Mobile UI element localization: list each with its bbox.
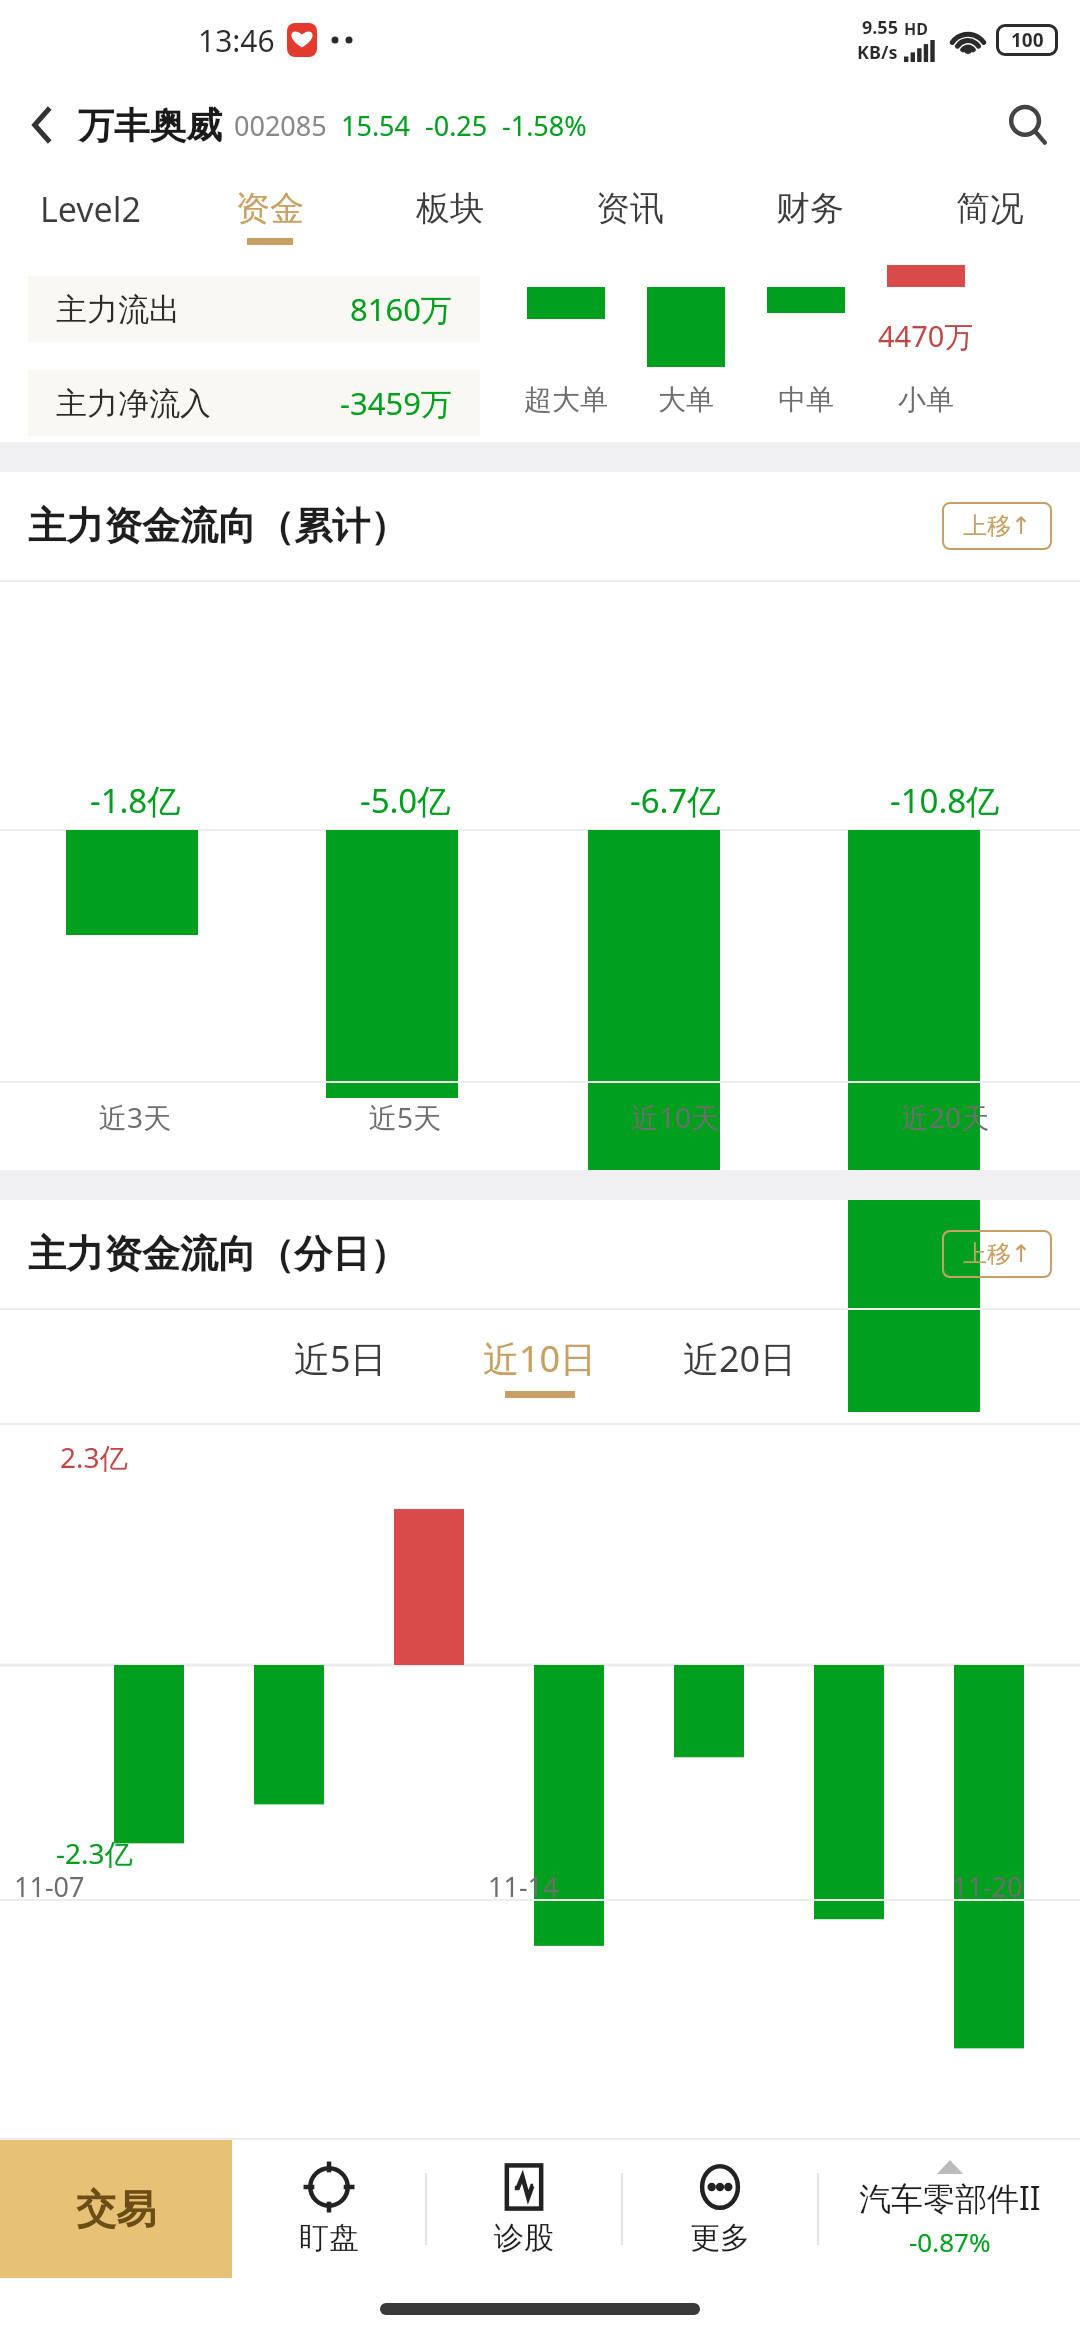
button[interactable]: 上移↑ [942, 502, 1052, 550]
staticText: -5.0亿 [360, 778, 451, 823]
staticText: 板块 [416, 187, 484, 230]
staticText: -6.7亿 [630, 778, 721, 823]
staticText: -3459万 [340, 382, 452, 424]
staticText: -0.25 [425, 107, 488, 144]
staticText: 超大单 [524, 382, 608, 417]
staticText: 100 [1011, 27, 1044, 53]
staticText: 资讯 [596, 187, 664, 230]
staticText: 中单 [778, 382, 834, 417]
button[interactable]: 近5日 [240, 1310, 440, 1422]
staticText: 简况 [956, 187, 1024, 230]
staticText: 大单 [658, 382, 714, 417]
button[interactable]: 资金 [180, 170, 360, 262]
button[interactable]: Back [22, 103, 66, 147]
button[interactable]: 交易 [0, 2140, 232, 2278]
staticText: 近3天 [99, 1098, 172, 1136]
button[interactable]: Search [998, 95, 1058, 155]
staticText: 上移↑ [963, 511, 1032, 541]
staticText: 近20天 [901, 1098, 990, 1136]
staticText: -0.87% [909, 2224, 991, 2259]
staticText: 近20日 [683, 1334, 797, 1383]
staticText: 上移↑ [963, 1239, 1032, 1269]
staticText: HD [904, 18, 928, 40]
staticText: 交易 [76, 2184, 156, 2234]
button[interactable]: 汽车零部件II [819, 2140, 1080, 2278]
staticText: 盯盘 [299, 2219, 359, 2257]
staticText: 近5天 [369, 1098, 442, 1136]
staticText: -1.58% [502, 107, 587, 144]
button[interactable]: 财务 [720, 170, 900, 262]
staticText: 9.55 [862, 15, 898, 40]
button[interactable]: 近10日 [440, 1310, 640, 1422]
staticText: 小单 [898, 382, 954, 417]
staticText: -10.8亿 [890, 778, 1000, 823]
staticText: Level2 [40, 186, 141, 232]
staticText: 11-07 [14, 1868, 85, 1905]
staticText: 诊股 [494, 2219, 554, 2257]
staticText: 更多 [690, 2219, 750, 2257]
button[interactable]: 板块 [360, 170, 540, 262]
staticText: 2.3亿 [60, 1438, 128, 1476]
staticText: 近10天 [631, 1098, 720, 1136]
staticText: 财务 [776, 187, 844, 230]
staticText: 主力资金流向（分日） [28, 1230, 408, 1278]
staticText: 资金 [236, 187, 304, 230]
button[interactable]: 主力净流入 [56, 370, 452, 436]
staticText: 002085 [234, 107, 327, 144]
staticText: 15.54 [341, 107, 411, 144]
staticText: 主力流出 [56, 290, 180, 329]
staticText: 近5日 [294, 1334, 387, 1383]
staticText: 近10日 [483, 1334, 597, 1383]
button[interactable]: Level2 [0, 170, 180, 262]
staticText: 4470万 [878, 316, 974, 356]
button[interactable]: 近20日 [640, 1310, 840, 1422]
button[interactable]: 诊股 [427, 2140, 621, 2278]
staticText: -1.8亿 [90, 778, 181, 823]
button[interactable]: 简况 [900, 170, 1080, 262]
button[interactable]: 资讯 [540, 170, 720, 262]
staticText: 万丰奥威 [78, 103, 222, 148]
button[interactable]: 更多 [623, 2140, 817, 2278]
staticText: 11-14 [488, 1868, 559, 1905]
staticText: 主力净流入 [56, 384, 211, 423]
staticText: -2.3亿 [56, 1834, 133, 1872]
button[interactable]: 上移↑ [942, 1230, 1052, 1278]
button[interactable]: 盯盘 [232, 2140, 425, 2278]
staticText: 11-20 [952, 1868, 1023, 1905]
staticText: 主力资金流向（累计） [28, 502, 408, 550]
staticText: 汽车零部件II [859, 2176, 1041, 2220]
staticText: KB/s [857, 40, 898, 65]
staticText: 8160万 [350, 288, 452, 330]
staticText: 13:46 [198, 20, 275, 61]
button[interactable]: 主力流出 [56, 276, 452, 342]
